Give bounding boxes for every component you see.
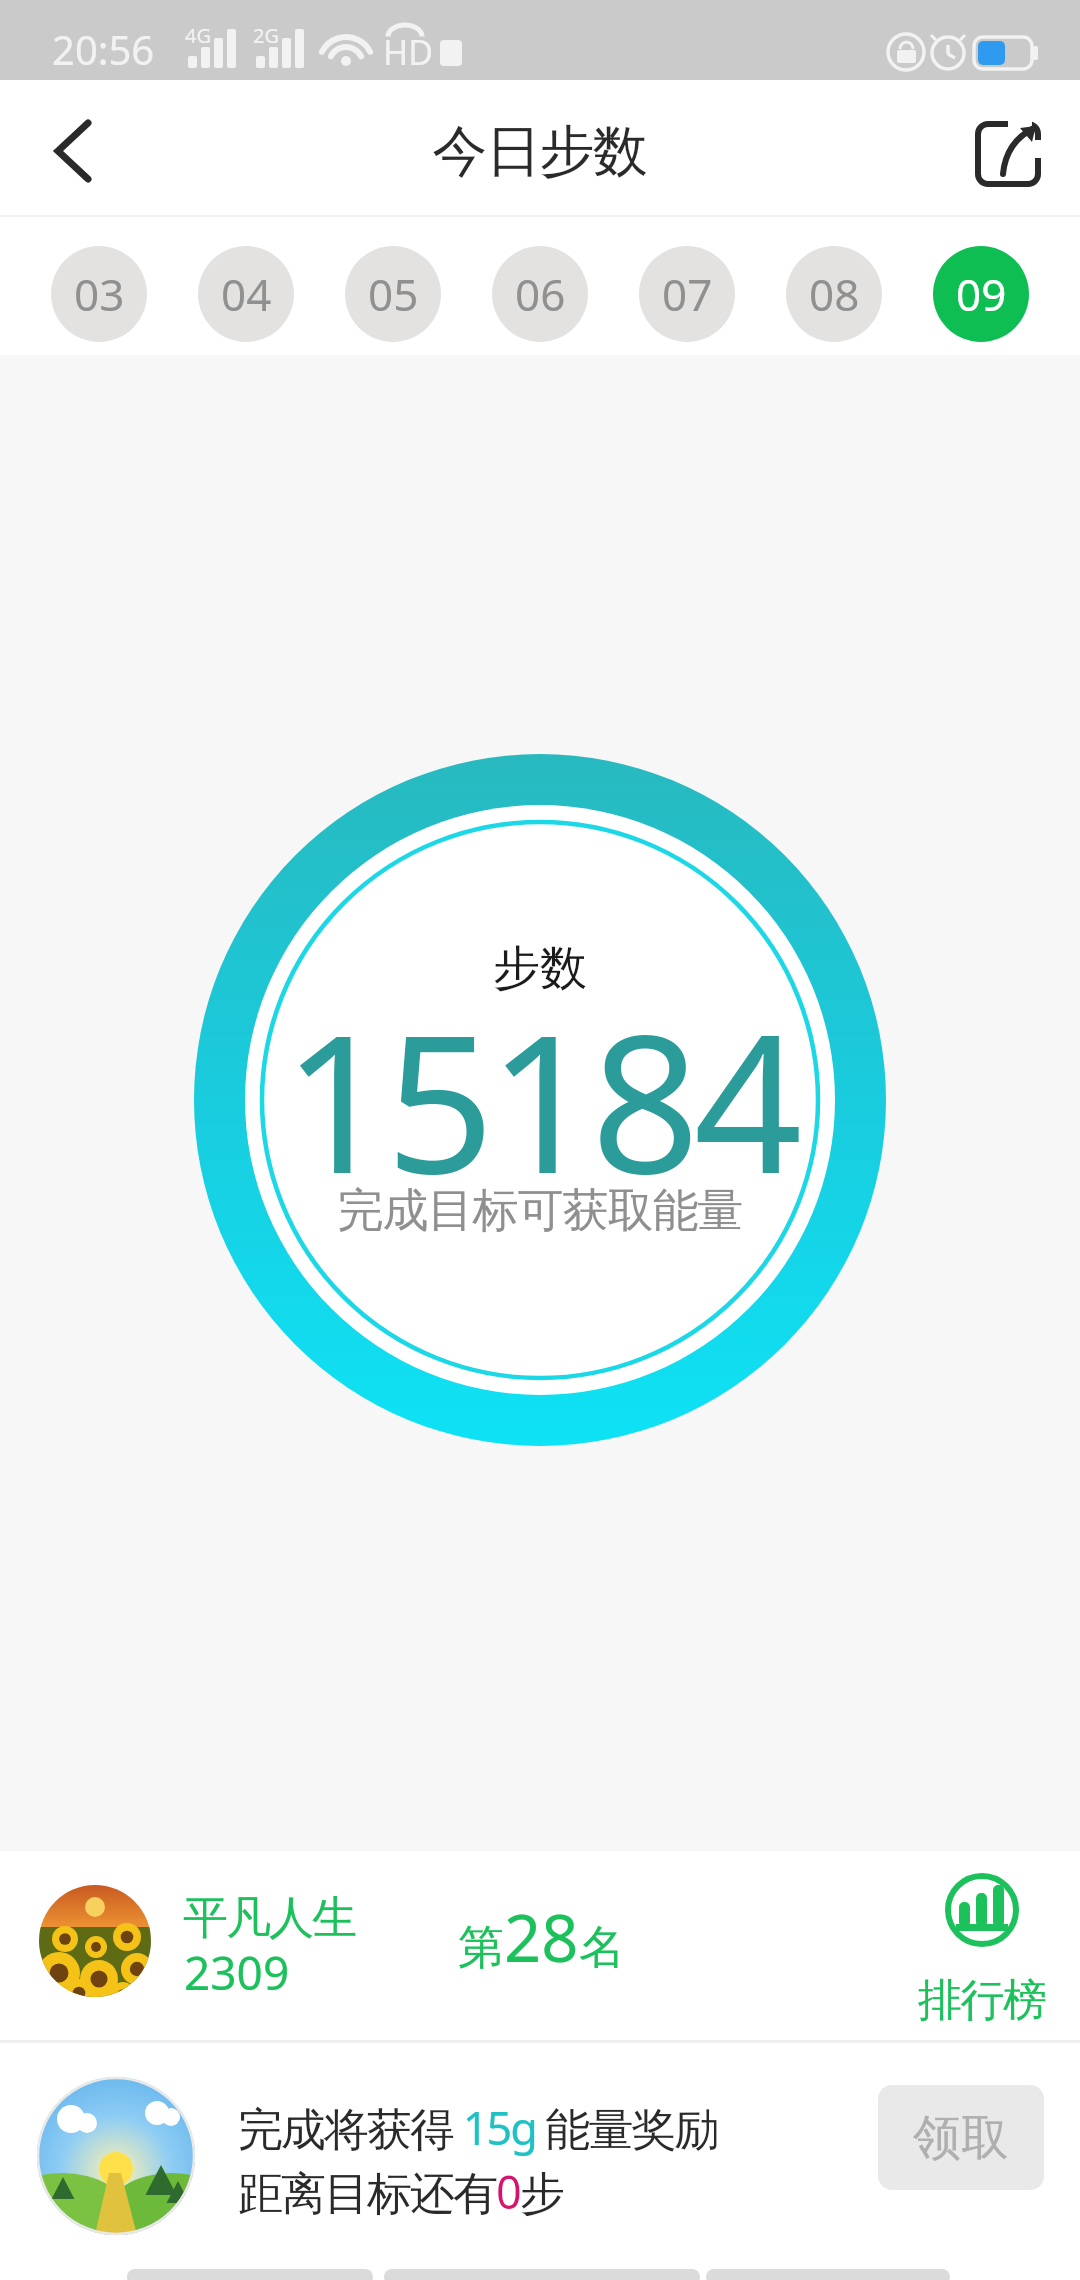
staticText: 06 — [515, 264, 566, 324]
staticText: 完成将获得 15g 能量奖励 — [238, 2097, 718, 2158]
staticText: 03 — [74, 264, 125, 324]
staticText: 第 — [458, 1919, 504, 1977]
button[interactable]: 08 — [786, 246, 882, 342]
button[interactable] — [30, 110, 120, 200]
staticText: 08 — [809, 264, 860, 324]
button[interactable]: 07 — [639, 246, 735, 342]
staticText: 平凡人生 — [184, 1890, 356, 1947]
staticText: 2309 — [184, 1941, 290, 2004]
button[interactable]: 04 — [198, 246, 294, 342]
staticText: 2G — [253, 22, 279, 49]
staticText: 04 — [221, 264, 272, 324]
button[interactable]: 03 — [51, 246, 147, 342]
staticText: 领取 — [913, 2108, 1009, 2168]
button[interactable]: 05 — [345, 246, 441, 342]
staticText: 05 — [368, 264, 419, 324]
button[interactable]: 06 — [492, 246, 588, 342]
staticText: 09 — [956, 264, 1007, 324]
button[interactable]: 排行榜 — [908, 1867, 1058, 2027]
staticText: 15184 — [283, 970, 797, 1229]
staticText: 07 — [662, 264, 713, 324]
staticText: HD — [383, 29, 434, 75]
button[interactable]: 完成将获得 15g 能量奖励 — [0, 2043, 1080, 2280]
button[interactable]: 09 — [933, 246, 1029, 342]
staticText: 28 — [504, 1893, 579, 1982]
staticText: 今日步数 — [433, 117, 647, 186]
staticText: 20:56 — [52, 22, 155, 76]
button[interactable] — [968, 112, 1048, 192]
staticText: 距离目标还有0步 — [238, 2161, 563, 2222]
staticText: 4G — [185, 22, 211, 49]
button[interactable]: 领取 — [878, 2085, 1044, 2190]
button[interactable]: 平凡人生 — [0, 1851, 1080, 2040]
staticText: 名 — [579, 1919, 625, 1977]
staticText: 排行榜 — [918, 1973, 1046, 2028]
staticText: 完成目标可获取能量 — [338, 1182, 743, 1240]
staticText: 步数 — [493, 939, 587, 998]
